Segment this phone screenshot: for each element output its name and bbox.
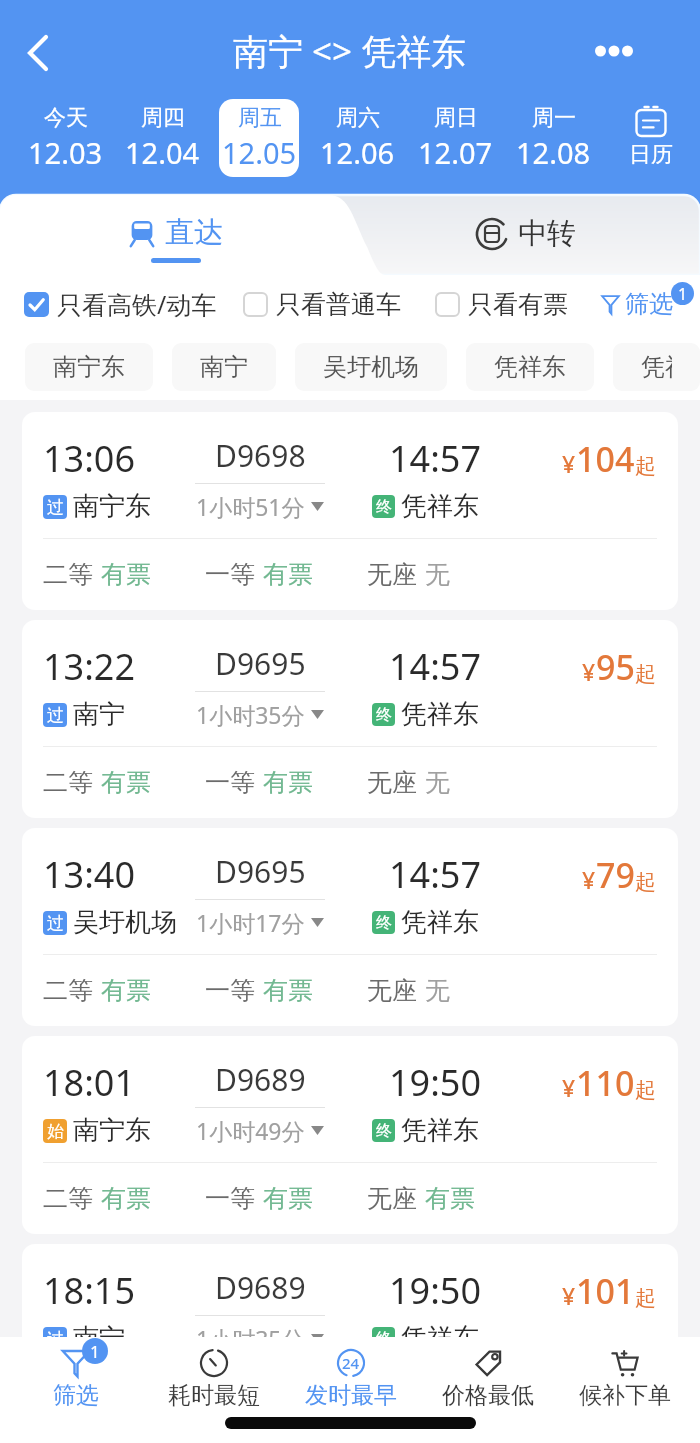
button[interactable]: 南宁 [172, 343, 276, 391]
button[interactable]: 凭祥 [613, 343, 700, 391]
staticText: 101 [576, 1268, 635, 1314]
staticText: 104 [576, 436, 635, 482]
staticText: 无 [425, 767, 450, 798]
staticText: 凭祥 [641, 352, 672, 382]
staticText: 南宁东 [53, 352, 125, 382]
staticText: 19:50 [389, 1266, 482, 1315]
button[interactable]: 中转 [350, 195, 700, 275]
staticText: 12.06 [320, 133, 395, 172]
button[interactable]: Calendar [602, 88, 700, 188]
staticText: 过 [47, 705, 64, 726]
staticText: 有票 [101, 767, 151, 798]
button[interactable]: 只看有票 [435, 289, 568, 320]
staticText: 筛选 [625, 289, 673, 319]
button[interactable]: 筛选 [601, 289, 696, 319]
button[interactable]: 南宁东 [25, 343, 153, 391]
staticText: D9698 [215, 435, 306, 476]
staticText: 14:57 [389, 434, 482, 483]
staticText: 起 [635, 661, 656, 687]
staticText: 始 [47, 1121, 64, 1142]
staticText: 一等 [205, 767, 255, 798]
staticText: 12.03 [28, 133, 103, 172]
button[interactable]: 周五 [210, 88, 308, 188]
staticText: 有票 [425, 1391, 475, 1422]
staticText: 一等 [205, 975, 255, 1006]
staticText: 二等 [43, 1391, 93, 1422]
staticText: 无座 [367, 1183, 417, 1214]
staticText: 79 [596, 852, 635, 898]
button[interactable]: 只看高铁/动车 [24, 287, 217, 321]
button[interactable]: 吴圩机场 [295, 343, 447, 391]
staticText: 凭祥东 [401, 698, 479, 731]
staticText: 一等 [205, 1391, 255, 1422]
staticText: D9689 [215, 1059, 306, 1100]
staticText: ¥ [562, 1072, 576, 1103]
staticText: 凭祥东 [401, 906, 479, 939]
staticText: 吴圩机场 [73, 906, 177, 939]
button[interactable]: 耗时最短 [145, 1337, 282, 1407]
button[interactable]: More options [586, 23, 642, 79]
staticText: 14:57 [389, 642, 482, 691]
staticText: 95 [596, 644, 635, 690]
staticText: 起 [635, 453, 656, 479]
staticText: 无 [425, 559, 450, 590]
staticText: 凭祥东 [401, 490, 479, 523]
staticText: 110 [576, 1060, 635, 1106]
staticText: 周日 [434, 104, 478, 132]
staticText: 12.07 [418, 133, 493, 172]
staticText: 有票 [263, 1391, 313, 1422]
staticText: D9689 [215, 1267, 306, 1308]
button[interactable]: 1 [7, 1337, 145, 1407]
staticText: 南宁 [73, 1322, 125, 1355]
button[interactable]: Back [6, 23, 66, 83]
staticText: 二等 [43, 1183, 93, 1214]
staticText: 1 [678, 283, 688, 305]
staticText: 1小时35分 [196, 699, 305, 730]
staticText: 有票 [425, 1183, 475, 1214]
staticText: 有票 [101, 1183, 151, 1214]
staticText: 19:50 [389, 1058, 482, 1107]
staticText: 有票 [101, 975, 151, 1006]
staticText: 无座 [367, 767, 417, 798]
button[interactable]: 24 [282, 1337, 419, 1407]
staticText: 候补下单 [579, 1381, 671, 1410]
staticText: 无座 [367, 1391, 417, 1422]
staticText: 起 [635, 1077, 656, 1103]
button[interactable]: 候补下单 [556, 1337, 693, 1407]
staticText: 终 [376, 705, 392, 725]
staticText: ¥ [562, 448, 576, 479]
button[interactable]: 周四 [113, 88, 210, 188]
staticText: 周一 [532, 104, 576, 132]
staticText: 1 [90, 1340, 100, 1363]
staticText: 终 [376, 1121, 392, 1141]
button[interactable]: 价格最低 [419, 1337, 556, 1407]
button[interactable]: 只看普通车 [243, 289, 401, 320]
button[interactable]: 13:22 [22, 620, 678, 818]
button[interactable]: 周日 [406, 88, 504, 188]
button[interactable]: 周六 [308, 88, 406, 188]
staticText: 无 [425, 975, 450, 1006]
staticText: 终 [376, 497, 392, 517]
button[interactable]: 周一 [504, 88, 602, 188]
button[interactable]: 18:01 [22, 1036, 678, 1234]
staticText: 只看普通车 [276, 289, 401, 320]
staticText: 1小时51分 [196, 491, 305, 522]
button[interactable]: 13:06 [22, 412, 678, 610]
staticText: 中转 [518, 215, 576, 252]
staticText: ¥ [562, 1280, 576, 1311]
staticText: 价格最低 [442, 1381, 534, 1410]
staticText: 无座 [367, 975, 417, 1006]
staticText: 一等 [205, 559, 255, 590]
button[interactable]: 凭祥东 [466, 343, 594, 391]
button[interactable]: 18:15 [22, 1244, 678, 1442]
staticText: 1小时35分 [196, 1323, 305, 1354]
staticText: 南宁 [200, 352, 248, 382]
staticText: 过 [47, 1329, 64, 1350]
button[interactable]: 13:40 [22, 828, 678, 1026]
staticText: 凭祥东 [401, 1322, 479, 1355]
staticText: 南宁 [73, 698, 125, 731]
button[interactable]: 今天 [16, 88, 113, 188]
staticText: 日历 [629, 141, 673, 169]
staticText: 有票 [101, 559, 151, 590]
button[interactable]: 直达 [0, 195, 350, 275]
